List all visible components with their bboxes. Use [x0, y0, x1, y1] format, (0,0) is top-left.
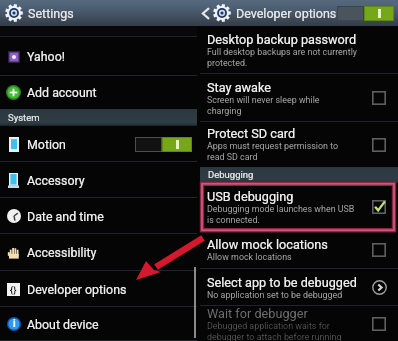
staticText: Debugged application waits for — [207, 321, 330, 331]
staticText: Desktop backup password — [207, 32, 357, 47]
button[interactable]: Add account — [0, 76, 197, 109]
button[interactable]: Accessibility — [0, 234, 197, 271]
button[interactable]: Wait for debugger — [200, 306, 398, 341]
button[interactable]: Allow mock locations — [200, 231, 398, 269]
staticText: Add account — [27, 85, 97, 100]
staticText: Full desktop backups are not currently — [207, 47, 358, 57]
button[interactable]: Desktop backup password — [200, 26, 398, 74]
staticText: Developer options — [236, 6, 337, 21]
button[interactable]: Stay awake — [200, 74, 398, 122]
staticText: Accessibility — [27, 245, 97, 260]
staticText: USB debugging — [207, 189, 294, 204]
staticText: Date and time — [27, 209, 104, 224]
staticText: Debugging — [208, 169, 254, 180]
staticText: {} — [10, 284, 17, 295]
staticText: Motion — [27, 137, 66, 152]
staticText: Screen will never sleep while — [207, 95, 320, 105]
staticText: Allow mock locations — [207, 252, 292, 262]
staticText: Wait for debugger — [207, 306, 308, 321]
button[interactable]: Toggle setting — [372, 243, 386, 257]
button[interactable]: Motion — [0, 126, 197, 162]
button[interactable]: Toggle setting — [372, 317, 386, 331]
button[interactable]: Toggle setting — [372, 200, 386, 214]
staticText: Protect SD card — [207, 126, 296, 141]
staticText: charging — [207, 106, 242, 116]
button[interactable]: Toggle setting — [372, 138, 386, 152]
button[interactable]: Select app to be debugged — [372, 280, 387, 295]
button[interactable]: Date and time — [0, 198, 197, 234]
button[interactable]: i — [0, 307, 197, 341]
button[interactable]: Yahoo! — [0, 37, 197, 76]
staticText: Debugging mode launches when USB — [207, 204, 355, 214]
staticText: i — [13, 318, 16, 330]
staticText: Allow mock locations — [207, 237, 328, 252]
staticText: Stay awake — [207, 80, 272, 95]
staticText: About device — [27, 317, 99, 332]
button[interactable]: Protect SD card — [200, 122, 398, 167]
staticText: No application set to be debugged — [207, 290, 343, 300]
staticText: Developer options — [27, 282, 127, 297]
button[interactable]: {} — [0, 271, 197, 307]
staticText: is connected. — [207, 215, 260, 225]
staticText: Select app to be debugged — [207, 275, 357, 290]
button[interactable]: Motion on — [135, 137, 192, 152]
button[interactable]: Settings — [0, 0, 197, 26]
staticText: System — [8, 112, 40, 123]
button[interactable]: Accessory — [0, 162, 197, 198]
staticText: read SD card — [207, 152, 258, 162]
button[interactable]: Select app to be debugged — [200, 269, 398, 306]
button[interactable]: Toggle setting — [372, 91, 386, 105]
staticText: Settings — [28, 6, 74, 21]
staticText: protected. — [207, 58, 248, 68]
button[interactable]: Back — [199, 0, 211, 26]
staticText: Accessory — [27, 173, 85, 188]
staticText: debugger to attach before running — [207, 332, 342, 341]
staticText: Apps must request permission to — [207, 141, 339, 151]
button[interactable]: Developer options on — [337, 6, 394, 21]
button[interactable]: USB debugging — [200, 183, 398, 231]
staticText: Yahoo! — [27, 49, 65, 64]
